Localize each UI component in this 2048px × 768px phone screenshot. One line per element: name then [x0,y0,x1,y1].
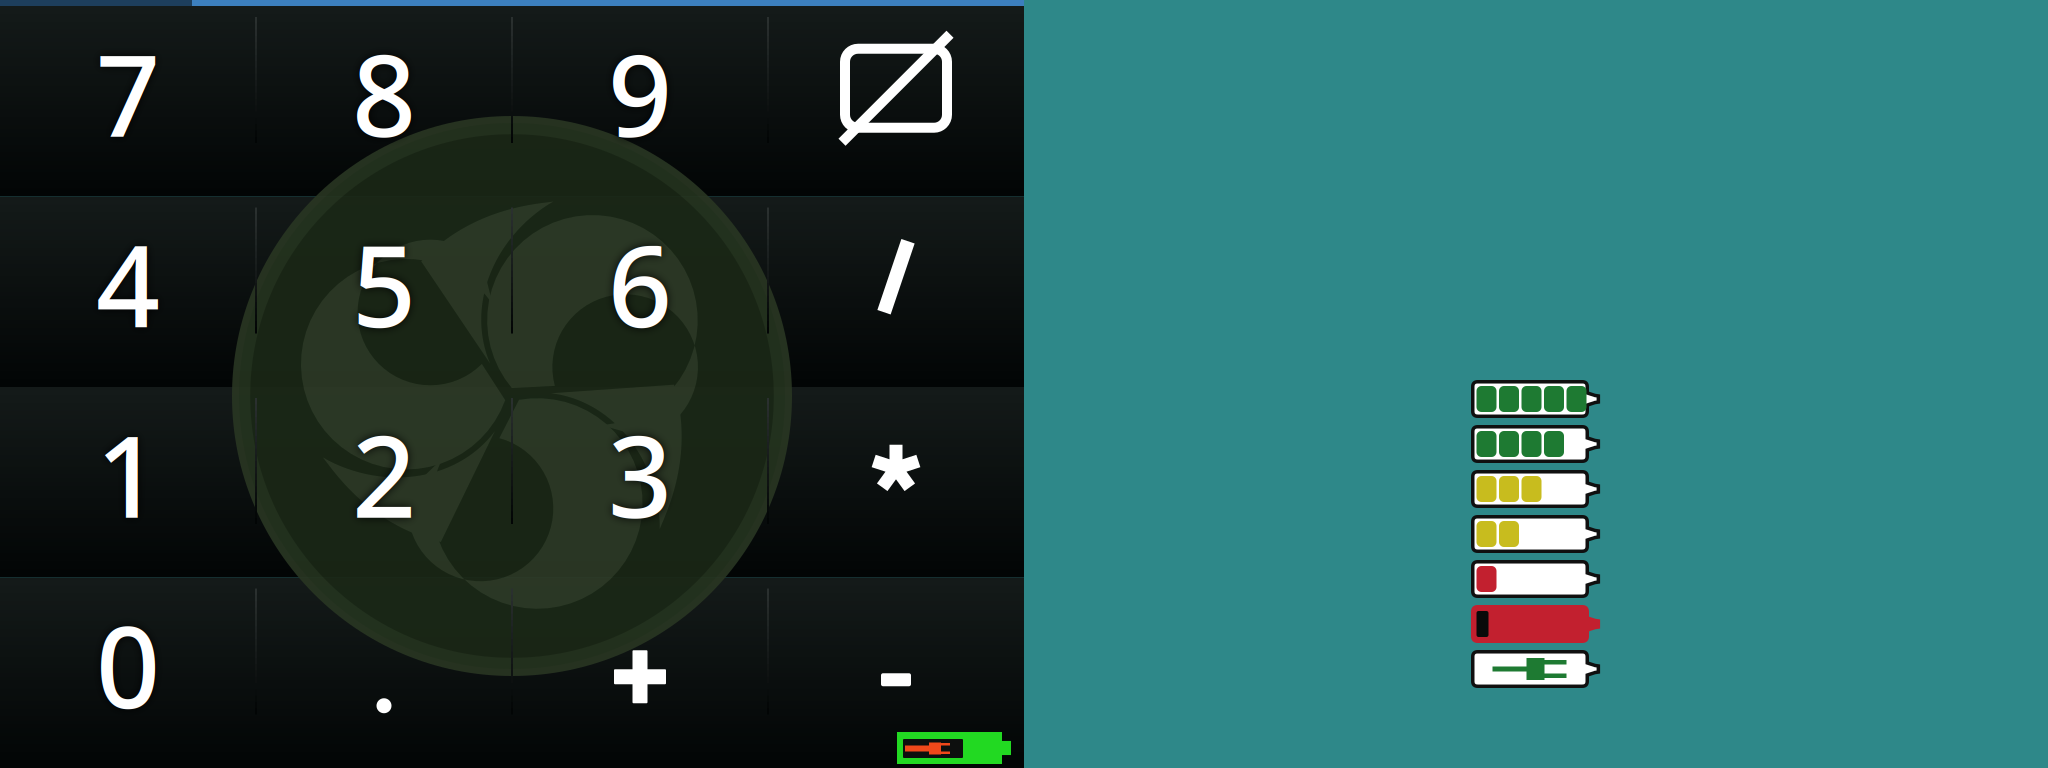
staticText: 5 [352,209,416,358]
button[interactable]: Divide [768,196,1024,387]
button[interactable]: 2 [256,387,512,577]
button[interactable]: Minus [768,577,1024,768]
staticText: 4 [96,209,160,358]
button[interactable]: 0 [0,577,256,768]
button[interactable]: Clear [768,6,1024,196]
button[interactable]: 3 [512,387,768,577]
staticText: 8 [352,19,416,168]
button[interactable]: 6 [512,196,768,387]
button[interactable]: 4 [0,196,256,387]
staticText: 6 [608,209,672,358]
staticText: 9 [608,19,672,168]
button[interactable]: 9 [512,6,768,196]
button[interactable]: 5 [256,196,512,387]
button[interactable]: Plus [512,577,768,768]
staticText: 2 [352,400,416,549]
staticText: 0 [96,590,160,739]
button[interactable]: 7 [0,6,256,196]
staticText: 3 [608,400,672,549]
button[interactable]: Multiply [768,387,1024,577]
staticText: 1 [96,400,160,549]
button[interactable]: 8 [256,6,512,196]
staticText: 7 [96,19,160,168]
button[interactable]: Decimal point [256,577,512,768]
button[interactable]: 1 [0,387,256,577]
